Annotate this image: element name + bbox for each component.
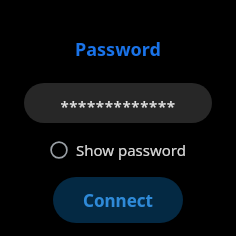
staticText: Password	[75, 37, 161, 62]
button[interactable]: Connect	[53, 177, 183, 223]
staticText: Connect	[83, 189, 153, 212]
button[interactable]: Show password	[46, 137, 190, 163]
staticText: Show password	[76, 140, 186, 160]
button[interactable]: *************	[24, 83, 212, 123]
staticText: *************	[60, 96, 176, 116]
